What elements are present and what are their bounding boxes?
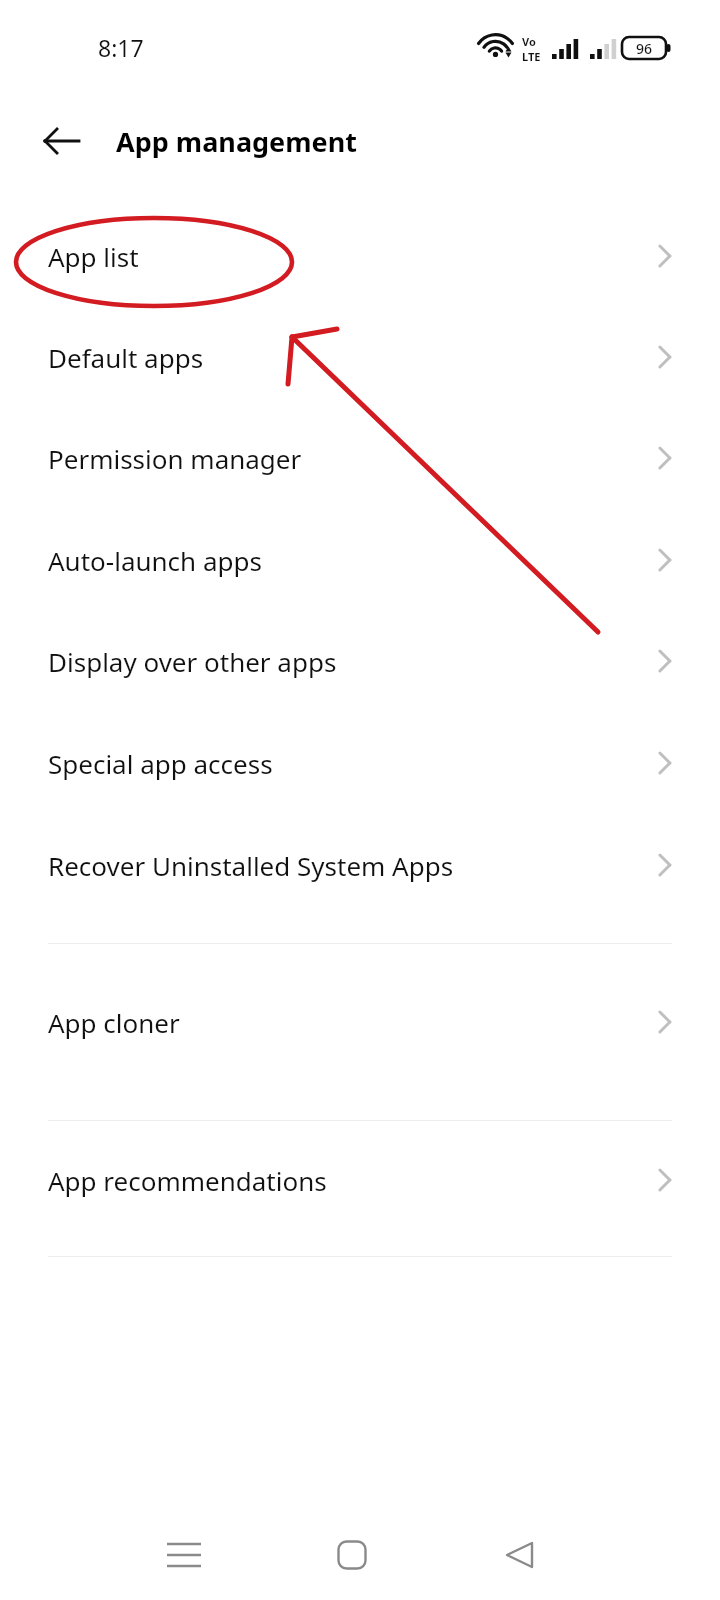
- staticText: Auto-launch apps: [48, 543, 262, 578]
- staticText: 96: [636, 39, 653, 58]
- button[interactable]: Back: [480, 1515, 560, 1595]
- button[interactable]: Display over other apps: [0, 611, 720, 711]
- button[interactable]: Home: [312, 1515, 392, 1595]
- staticText: Display over other apps: [48, 644, 337, 679]
- button[interactable]: Default apps: [0, 307, 720, 407]
- button[interactable]: App recommendations: [0, 1130, 720, 1230]
- button[interactable]: Permission manager: [0, 408, 720, 508]
- staticText: Vo: [522, 34, 536, 49]
- button[interactable]: App list: [0, 206, 720, 306]
- staticText: App management: [116, 123, 357, 160]
- staticText: Default apps: [48, 340, 204, 375]
- button[interactable]: App cloner: [0, 972, 720, 1072]
- staticText: Special app access: [48, 746, 273, 781]
- button[interactable]: Recover Uninstalled System Apps: [0, 815, 720, 915]
- staticText: 8:17: [98, 32, 144, 63]
- staticText: LTE: [522, 49, 541, 64]
- staticText: Permission manager: [48, 441, 302, 476]
- staticText: Recover Uninstalled System Apps: [48, 848, 454, 883]
- button[interactable]: Auto-launch apps: [0, 510, 720, 610]
- button[interactable]: Special app access: [0, 713, 720, 813]
- button[interactable]: Recent apps: [144, 1515, 224, 1595]
- staticText: App cloner: [48, 1005, 180, 1040]
- staticText: App list: [48, 239, 139, 274]
- button[interactable]: Back: [32, 111, 92, 171]
- staticText: App recommendations: [48, 1163, 327, 1198]
